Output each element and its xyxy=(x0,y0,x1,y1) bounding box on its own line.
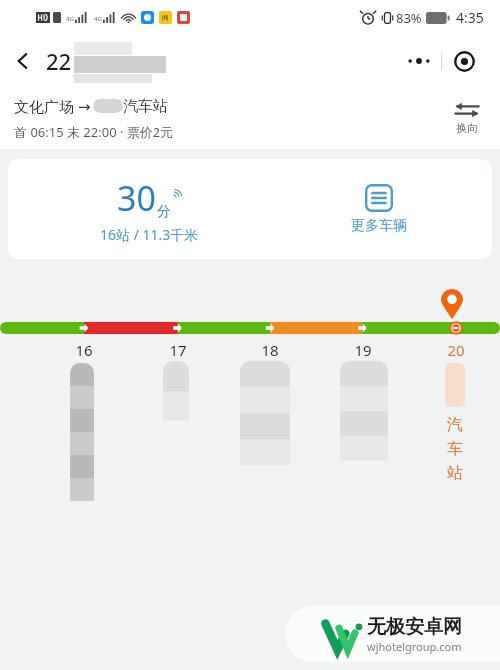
staticText: 汽车站 xyxy=(123,97,168,116)
button[interactable]: 汽 xyxy=(445,363,465,483)
staticText: 4G xyxy=(94,15,102,23)
staticText: 19 xyxy=(354,340,372,360)
staticText: 分 xyxy=(157,203,171,221)
button[interactable]: 19 xyxy=(349,339,377,361)
button[interactable]: More options xyxy=(397,45,441,77)
button[interactable]: 17 xyxy=(164,339,192,361)
button[interactable] xyxy=(163,361,189,421)
staticText: 4:35 xyxy=(456,8,484,27)
button[interactable]: Back xyxy=(0,38,46,84)
staticText: 汽 xyxy=(447,415,463,435)
button[interactable]: 30 xyxy=(100,175,199,244)
button[interactable]: 更多车辆 xyxy=(345,178,413,241)
button[interactable] xyxy=(240,361,290,465)
staticText: 16站 / 11.3千米 xyxy=(100,225,199,244)
staticText: wjhotelgroup.com xyxy=(367,639,462,654)
staticText: 18 xyxy=(261,340,279,360)
button[interactable]: 16 xyxy=(70,339,98,361)
button[interactable]: Locate xyxy=(442,45,486,77)
staticText: 22 xyxy=(46,46,72,76)
button[interactable]: Reverse direction xyxy=(446,97,488,139)
staticText: 83% xyxy=(396,9,422,27)
staticText: 换向 xyxy=(456,121,478,135)
staticText: 无极安卓网 xyxy=(367,615,462,639)
staticText: 20 xyxy=(447,340,465,360)
button[interactable]: 20 xyxy=(442,339,470,361)
button[interactable] xyxy=(70,363,94,501)
staticText: 网 xyxy=(162,13,169,22)
staticText: 17 xyxy=(169,340,187,360)
staticText: 文化广场 → xyxy=(14,96,91,116)
staticText: 4G xyxy=(66,15,74,23)
staticText: 16 xyxy=(75,340,93,360)
button[interactable]: 18 xyxy=(256,339,284,361)
staticText: 更多车辆 xyxy=(351,217,407,235)
staticText: 首 06:15 末 22:00 · 票价2元 xyxy=(14,123,174,141)
staticText: 车 xyxy=(447,439,463,459)
staticText: 站 xyxy=(447,463,463,483)
staticText: 30 xyxy=(117,175,156,221)
button[interactable] xyxy=(340,361,388,461)
